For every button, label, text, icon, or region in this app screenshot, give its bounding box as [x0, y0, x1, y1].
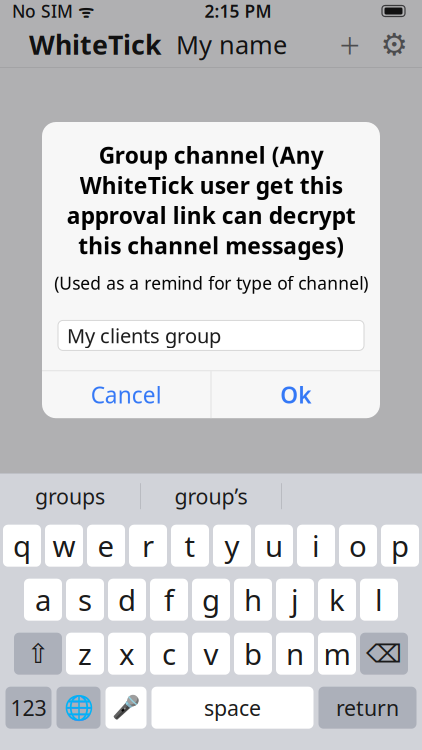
staticText: ⇧	[27, 639, 49, 669]
staticText: group’s	[174, 482, 247, 510]
staticText: ⚙	[380, 27, 407, 62]
button[interactable]: z	[66, 633, 104, 675]
button[interactable]: q	[3, 525, 41, 567]
button[interactable]: Add	[328, 22, 372, 66]
button[interactable]: f	[150, 579, 188, 621]
staticText: Ok	[280, 380, 311, 410]
staticText: b	[244, 634, 262, 673]
staticText: i	[312, 526, 320, 565]
staticText: x	[119, 634, 135, 673]
button[interactable]: n	[276, 633, 314, 675]
button[interactable]: 🌐	[56, 687, 100, 729]
button[interactable]: c	[150, 633, 188, 675]
staticText: Cancel	[91, 380, 162, 410]
staticText: z	[78, 634, 92, 673]
staticText: p	[391, 526, 409, 565]
staticText: My name	[162, 28, 287, 61]
button[interactable]: e	[87, 525, 125, 567]
staticText: q	[13, 526, 31, 565]
button[interactable]: m	[318, 633, 356, 675]
button[interactable]: ⌫	[360, 633, 408, 675]
button[interactable]: o	[339, 525, 377, 567]
staticText: o	[349, 526, 367, 565]
staticText: No SIM	[12, 0, 73, 22]
button[interactable]: y	[213, 525, 251, 567]
button[interactable]: l	[360, 579, 398, 621]
staticText: c	[162, 634, 176, 673]
button[interactable]: groups	[0, 474, 140, 518]
staticText: j	[291, 580, 299, 619]
button[interactable]: w	[45, 525, 83, 567]
button[interactable]: 🎤	[105, 687, 146, 729]
button[interactable]: h	[234, 579, 272, 621]
button[interactable]: Settings	[372, 22, 416, 66]
staticText: s	[78, 580, 92, 619]
staticText: d	[118, 580, 136, 619]
staticText: 2:15 PM	[204, 0, 271, 22]
staticText: space	[204, 693, 261, 722]
button[interactable]: t	[171, 525, 209, 567]
button[interactable]: j	[276, 579, 314, 621]
button[interactable]: return	[318, 687, 416, 729]
staticText: l	[375, 580, 383, 619]
staticText: +	[339, 21, 360, 68]
button[interactable]: group’s	[141, 474, 281, 518]
staticText: h	[244, 580, 262, 619]
staticText: 123	[10, 693, 46, 722]
button[interactable]: r	[129, 525, 167, 567]
staticText: t	[184, 526, 195, 565]
staticText: r	[142, 526, 154, 565]
button[interactable]: p	[381, 525, 419, 567]
staticText: n	[286, 634, 304, 673]
staticText: WhiteTick	[29, 27, 162, 62]
button[interactable]: v	[192, 633, 230, 675]
staticText: (Used as a remind for type of channel)	[54, 271, 368, 294]
button[interactable]: i	[297, 525, 335, 567]
staticText: ᯤ	[73, 0, 94, 22]
staticText: g	[202, 580, 220, 619]
staticText: k	[329, 580, 345, 619]
staticText: w	[52, 526, 75, 565]
staticText: My clients group	[67, 322, 221, 349]
button[interactable]: g	[192, 579, 230, 621]
staticText: u	[265, 526, 283, 565]
button[interactable]: s	[66, 579, 104, 621]
staticText: return	[336, 693, 399, 722]
staticText: m	[323, 634, 350, 673]
staticText: Group channel (Any WhiteTick user get th…	[66, 140, 355, 260]
staticText: f	[164, 580, 174, 619]
staticText: groups	[35, 482, 105, 510]
button[interactable]: Ok	[211, 371, 380, 418]
staticText: a	[35, 580, 51, 619]
button[interactable]: x	[108, 633, 146, 675]
staticText: 🎤	[112, 695, 140, 721]
button[interactable]: k	[318, 579, 356, 621]
button[interactable]: a	[24, 579, 62, 621]
button[interactable]: u	[255, 525, 293, 567]
staticText: e	[97, 526, 114, 565]
button[interactable]: 123	[5, 687, 51, 729]
button[interactable]: Cancel	[42, 371, 211, 418]
button[interactable]: b	[234, 633, 272, 675]
staticText: 🌐	[63, 694, 93, 721]
button[interactable]: d	[108, 579, 146, 621]
button[interactable]: ⇧	[14, 633, 62, 675]
staticText: ⌫	[366, 639, 402, 668]
staticText: y	[224, 526, 239, 565]
button[interactable]: space	[151, 687, 313, 729]
staticText: v	[203, 634, 218, 673]
